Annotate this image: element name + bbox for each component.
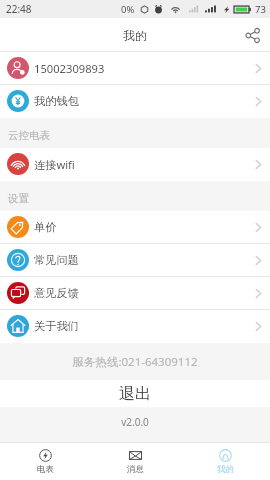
staticText: 我的钱包 (34, 94, 79, 108)
button[interactable]: 我的 (180, 443, 270, 480)
staticText: 意见反馈 (34, 286, 79, 300)
staticText: 退出 (119, 384, 151, 404)
button[interactable]: 连接wifi (0, 148, 270, 181)
staticText: 服务热线:021-64309112 (0, 354, 270, 370)
staticText: 73 (255, 3, 266, 16)
button[interactable]: 消息 (90, 443, 180, 480)
staticText: 0% (121, 3, 135, 16)
staticText: 我的 (217, 464, 234, 475)
staticText: 单价 (34, 220, 57, 234)
button[interactable]: 单价 (0, 211, 270, 244)
staticText: 电表 (37, 464, 54, 475)
button[interactable]: Share (237, 20, 267, 50)
staticText: v2.0.0 (0, 415, 270, 427)
staticText: 我的 (123, 28, 147, 43)
button[interactable]: 我的钱包 (0, 85, 270, 118)
staticText: 15002309893 (34, 61, 105, 76)
button[interactable]: 关于我们 (0, 310, 270, 343)
staticText: 设置 (8, 192, 29, 205)
staticText: 关于我们 (34, 319, 79, 333)
button[interactable]: 意见反馈 (0, 277, 270, 310)
staticText: 云控电表 (8, 129, 50, 142)
button[interactable]: 15002309893 (0, 52, 270, 85)
button[interactable]: 退出 (0, 380, 270, 407)
staticText: 22:48 (6, 2, 32, 16)
staticText: 常见问题 (34, 253, 79, 267)
button[interactable]: 电表 (0, 443, 90, 480)
staticText: 消息 (127, 464, 144, 475)
button[interactable]: 常见问题 (0, 244, 270, 277)
staticText: 连接wifi (34, 157, 75, 172)
